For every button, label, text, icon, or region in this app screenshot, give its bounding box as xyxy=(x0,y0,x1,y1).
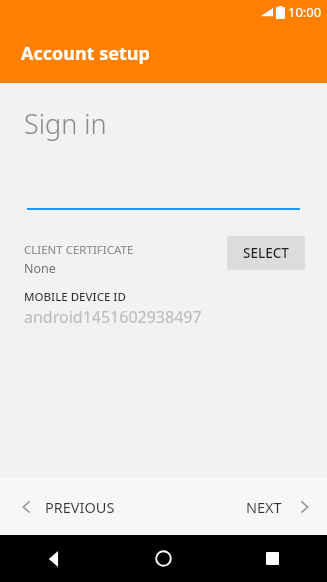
staticText: android1451602938497 xyxy=(24,306,202,328)
staticText: Sign in xyxy=(24,105,107,142)
button[interactable]: PREVIOUS xyxy=(0,485,127,529)
staticText: SELECT xyxy=(243,244,289,262)
button[interactable]: Home xyxy=(109,535,218,582)
button[interactable]: SELECT xyxy=(227,236,305,270)
staticText: 10:00 xyxy=(288,3,322,21)
staticText: NEXT xyxy=(246,497,282,517)
staticText: None xyxy=(24,260,56,277)
button[interactable]: NEXT xyxy=(234,485,327,529)
button[interactable] xyxy=(27,180,300,210)
staticText: CLIENT CERTIFICATE xyxy=(24,242,134,258)
staticText: MOBILE DEVICE ID xyxy=(24,289,126,305)
button[interactable]: Recent apps xyxy=(218,535,327,582)
staticText: PREVIOUS xyxy=(45,497,115,517)
button[interactable]: Back xyxy=(0,535,109,582)
staticText: Account setup xyxy=(21,41,150,66)
